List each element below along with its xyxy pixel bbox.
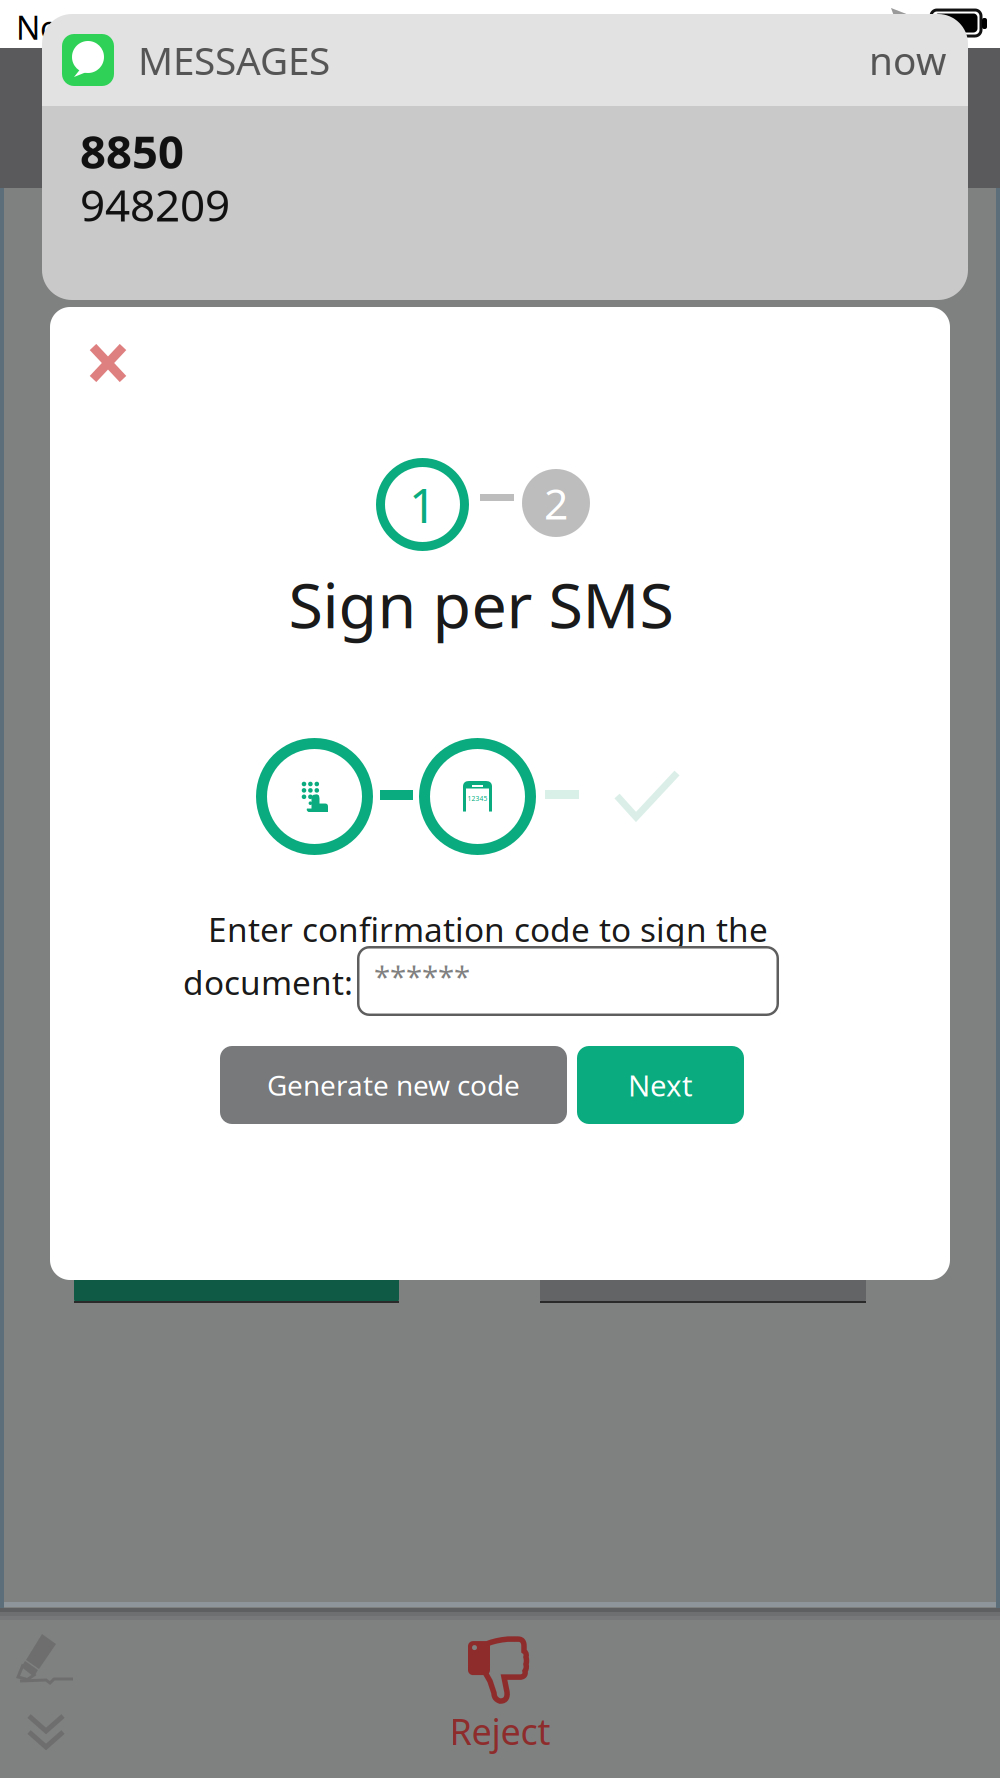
button[interactable]: Next: [577, 1046, 744, 1124]
staticText: document:: [183, 960, 353, 1004]
button[interactable]: Generate new code: [220, 1046, 567, 1124]
button[interactable]: Next page: [25, 1712, 69, 1752]
staticText: 1: [409, 473, 436, 536]
button[interactable]: Sign: [14, 1622, 80, 1684]
staticText: Generate new code: [267, 1066, 520, 1104]
staticText: 8850: [80, 121, 184, 181]
staticText: 2: [544, 475, 568, 531]
staticText: ******: [374, 956, 470, 995]
staticText: MESSAGES: [138, 34, 330, 86]
staticText: No SIM: [16, 6, 125, 48]
staticText: Reject: [449, 1707, 550, 1755]
staticText: 948209: [80, 175, 230, 234]
staticText: 12345: [467, 794, 487, 803]
staticText: Sign per SMS: [288, 562, 673, 646]
button[interactable]: Close: [75, 331, 139, 395]
button[interactable]: Reject: [400, 1629, 600, 1761]
staticText: now: [869, 34, 946, 86]
staticText: Next: [628, 1065, 693, 1104]
staticText: Enter confirmation code to sign the: [208, 907, 768, 951]
